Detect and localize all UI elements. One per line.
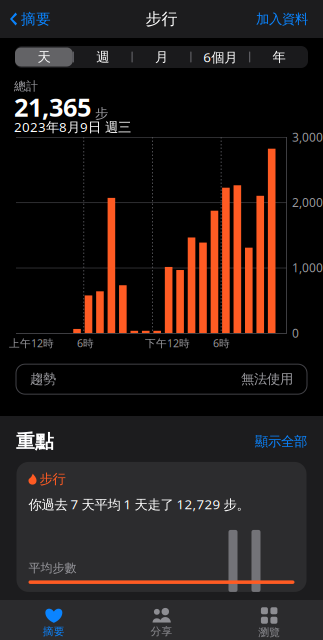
staticText: 6時	[213, 336, 230, 350]
staticText: 21,365	[14, 90, 91, 124]
button[interactable]: 顯示全部	[255, 433, 307, 450]
staticText: 分享	[150, 625, 172, 638]
staticText: 6個月	[203, 48, 237, 66]
button[interactable]: 週	[74, 47, 132, 66]
button[interactable]: 摘要	[0, 4, 51, 34]
staticText: 1,000	[292, 260, 323, 276]
staticText: 步	[95, 105, 108, 122]
button[interactable]: 加入資料	[256, 5, 323, 33]
staticText: 3,000	[292, 129, 323, 145]
staticText: 瀏覽	[258, 626, 280, 639]
staticText: 下午12時	[145, 336, 190, 350]
staticText: 年	[273, 49, 286, 65]
staticText: 加入資料	[256, 11, 308, 27]
staticText: 步行	[39, 471, 65, 487]
staticText: 步行	[145, 9, 177, 29]
staticText: 週	[96, 49, 109, 65]
staticText: 2023年8月9日 週三	[14, 118, 131, 136]
staticText: 6時	[77, 336, 94, 350]
button[interactable]: 分享	[108, 608, 215, 638]
staticText: 總計	[14, 79, 38, 94]
button[interactable]: 瀏覽	[215, 607, 323, 639]
staticText: 上午12時	[9, 336, 54, 350]
button[interactable]: 趨勢	[16, 364, 307, 394]
staticText: 無法使用	[241, 371, 293, 387]
staticText: 摘要	[21, 10, 51, 28]
staticText: 摘要	[43, 625, 65, 638]
staticText: 重點	[16, 430, 54, 453]
button[interactable]: 月	[133, 47, 190, 66]
button[interactable]: 年	[250, 47, 308, 66]
button[interactable]: 天	[15, 47, 73, 66]
staticText: 顯示全部	[255, 433, 307, 450]
button[interactable]: 步行	[16, 462, 306, 592]
staticText: 你過去 7 天平均 1 天走了 12,729 步。	[28, 495, 249, 513]
staticText: 月	[155, 49, 168, 65]
staticText: 0	[292, 325, 299, 341]
staticText: 2,000	[292, 194, 323, 210]
button[interactable]: 摘要	[0, 608, 108, 638]
staticText: 天	[37, 49, 50, 65]
staticText: 平均步數	[28, 561, 76, 575]
button[interactable]: 6個月	[191, 47, 249, 66]
staticText: 趨勢	[30, 371, 56, 387]
